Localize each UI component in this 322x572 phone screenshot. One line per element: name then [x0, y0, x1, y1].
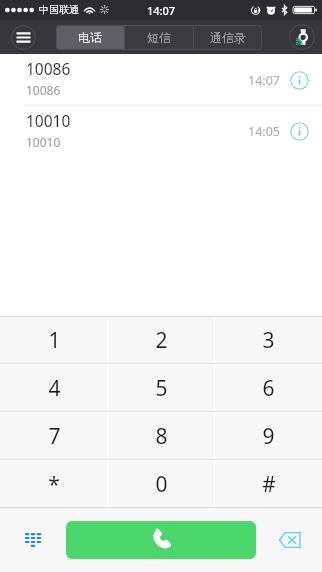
staticText: 7 [48, 422, 61, 451]
button[interactable]: 9 [215, 413, 322, 459]
staticText: 中国联通 [39, 3, 79, 16]
staticText: 10010 [26, 134, 61, 150]
staticText: 10010 [26, 110, 71, 131]
button[interactable]: 电话 [56, 25, 124, 50]
button[interactable]: 1 [0, 317, 108, 363]
staticText: 2 [155, 326, 168, 355]
button[interactable]: * [0, 461, 108, 507]
button[interactable]: 7 [0, 413, 108, 459]
button[interactable]: 0 [108, 461, 215, 507]
staticText: 10086 [26, 82, 61, 98]
button[interactable]: 6 [215, 365, 322, 411]
button[interactable]: Watch connection [289, 24, 315, 50]
button[interactable]: 5 [108, 365, 215, 411]
button[interactable]: 10010 [0, 106, 322, 157]
staticText: 14:05 [248, 123, 280, 140]
button[interactable]: Call [66, 521, 256, 559]
button[interactable]: 3 [215, 317, 322, 363]
button[interactable]: Call details [290, 71, 309, 90]
button[interactable]: Dial pad [0, 508, 66, 572]
staticText: 14:07 [147, 3, 176, 18]
button[interactable]: 10086 [0, 54, 322, 106]
staticText: 电话 [78, 30, 102, 45]
staticText: 3 [262, 326, 275, 355]
staticText: 10086 [26, 58, 71, 79]
staticText: 0 [155, 470, 168, 499]
button[interactable]: Call details [290, 122, 309, 141]
staticText: 6 [262, 374, 275, 403]
button[interactable]: # [215, 461, 322, 507]
button[interactable]: 4 [0, 365, 108, 411]
button[interactable]: 短信 [125, 25, 193, 50]
staticText: 通信录 [210, 30, 246, 45]
staticText: 短信 [147, 30, 171, 45]
staticText: 14:07 [248, 72, 280, 89]
button[interactable]: 8 [108, 413, 215, 459]
staticText: 4 [48, 374, 61, 403]
staticText: * [48, 470, 60, 499]
staticText: 8 [155, 422, 168, 451]
button[interactable]: 通信录 [194, 25, 262, 50]
staticText: 9 [262, 422, 275, 451]
staticText: 5 [155, 374, 168, 403]
staticText: 1 [48, 326, 61, 355]
button[interactable]: 2 [108, 317, 215, 363]
button[interactable]: Backspace [256, 508, 322, 572]
staticText: # [262, 470, 276, 499]
button[interactable]: Menu [11, 25, 36, 50]
